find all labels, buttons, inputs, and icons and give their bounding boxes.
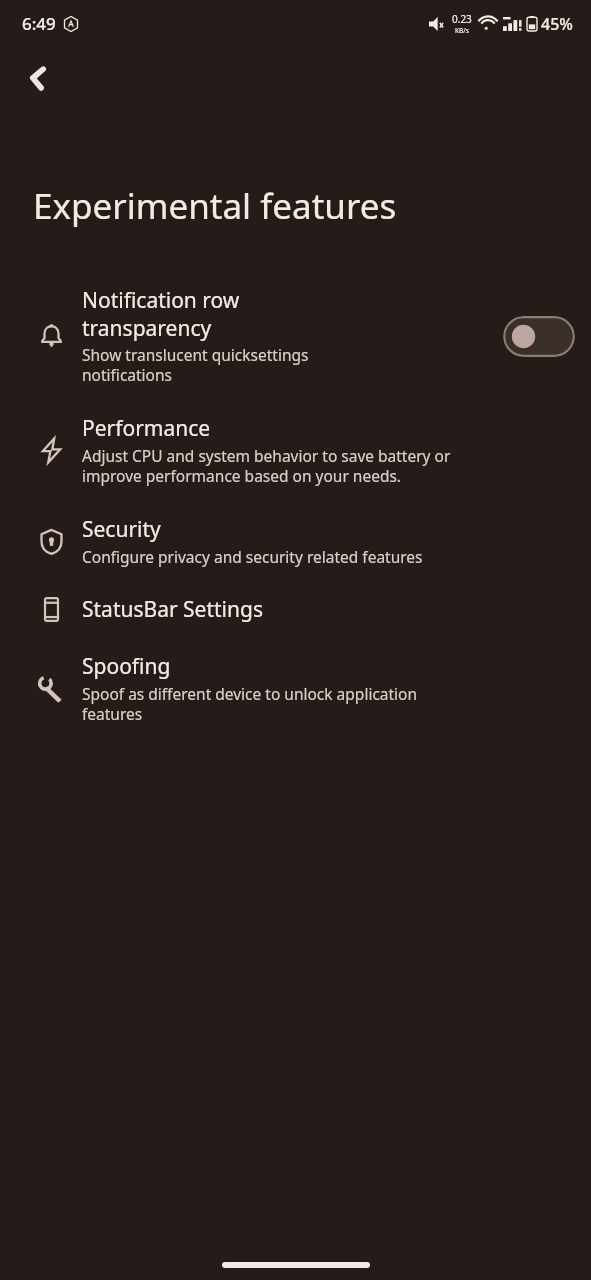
button[interactable]: Notification row transparency toggle	[503, 316, 575, 357]
staticText: KB/s	[455, 26, 469, 35]
staticText: Show translucent quicksettings notificat…	[82, 344, 309, 386]
staticText: StatusBar Settings	[82, 595, 263, 624]
staticText: Notification row transparency	[82, 286, 240, 342]
button[interactable]: Notification row transparency	[0, 272, 591, 400]
button[interactable]: Security	[0, 501, 591, 581]
staticText: Spoofing	[82, 652, 171, 681]
button[interactable]: Back	[10, 50, 66, 106]
button[interactable]: Spoofing	[0, 638, 591, 739]
staticText: 45%	[541, 13, 573, 35]
staticText: Security	[82, 515, 161, 544]
button[interactable]: StatusBar Settings	[0, 581, 591, 638]
staticText: Performance	[82, 414, 211, 443]
button[interactable]: Performance	[0, 400, 591, 501]
staticText: Configure privacy and security related f…	[82, 546, 423, 567]
staticText: 0.23	[452, 12, 472, 26]
staticText: Experimental features	[33, 182, 397, 230]
staticText: Spoof as different device to unlock appl…	[82, 683, 418, 725]
staticText: Adjust CPU and system behavior to save b…	[82, 445, 451, 487]
staticText: 6:49	[22, 12, 56, 35]
